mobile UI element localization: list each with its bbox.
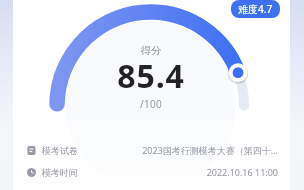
staticText: 2023国考行测模考大赛（第四十... <box>86 144 278 156</box>
other: Paper <box>27 146 36 155</box>
staticText: 得分 <box>51 44 251 57</box>
button[interactable]: Time <box>27 166 278 178</box>
staticText: /100 <box>51 97 251 111</box>
button[interactable]: 难度4.7 <box>231 0 280 18</box>
staticText: 模考试卷 <box>42 145 78 156</box>
staticText: 难度4.7 <box>238 2 273 16</box>
staticText: 2022.10.16 11:00 <box>86 166 278 178</box>
other: Time <box>27 168 36 177</box>
button[interactable]: Paper <box>27 144 278 156</box>
staticText: 85.4 <box>51 54 251 98</box>
staticText: 模考时间 <box>42 167 78 178</box>
